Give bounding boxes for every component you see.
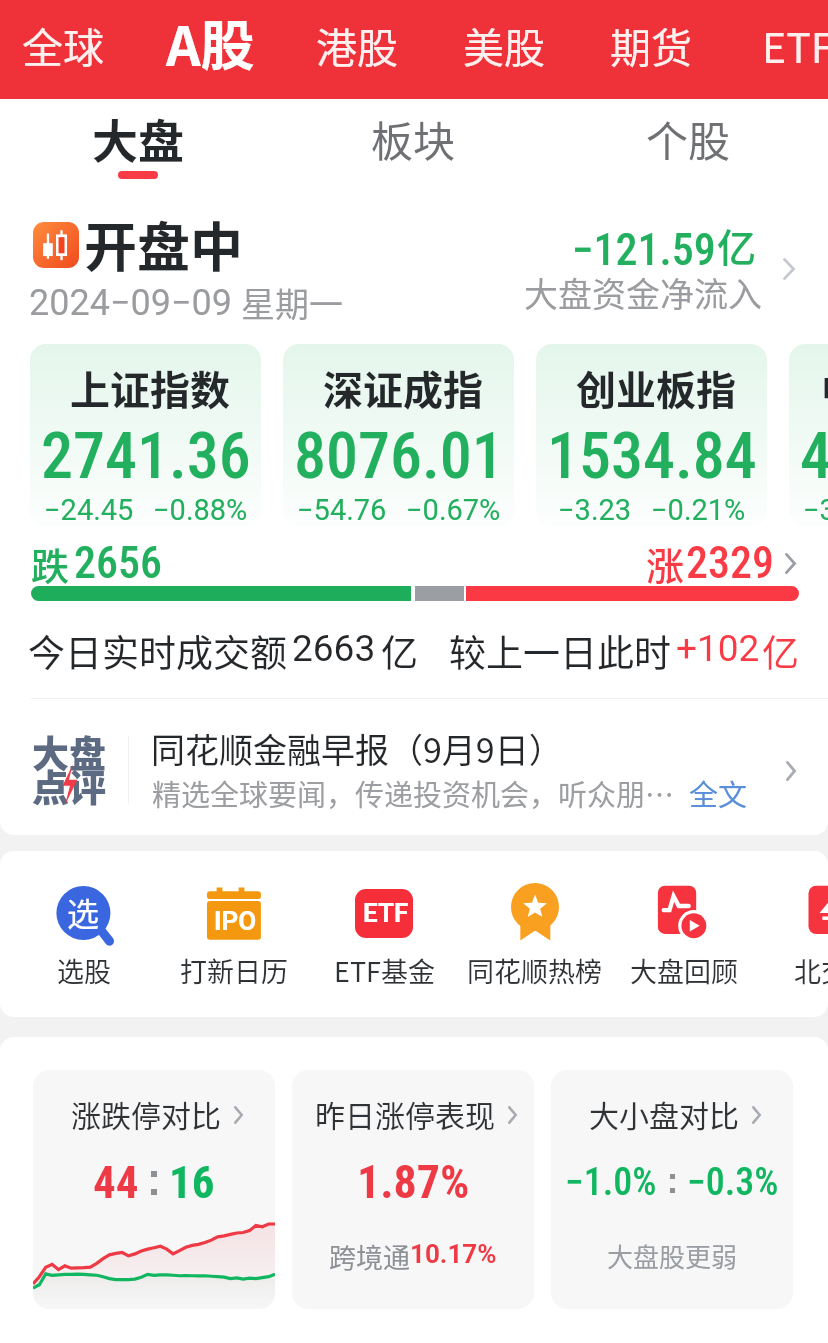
- staticText: 4686.15: [800, 419, 828, 494]
- staticText: 大盘股更弱: [607, 1237, 738, 1275]
- staticText: 板块: [371, 108, 456, 169]
- button[interactable]: 大盘: [46, 99, 230, 191]
- button[interactable]: 北交所: [760, 851, 828, 1017]
- staticText: 精选全球要闻，传递投资机会，听众朋…: [152, 772, 675, 814]
- staticText: 打新日历: [180, 951, 288, 990]
- staticText: 44: [93, 1156, 139, 1209]
- button[interactable]: 同花顺热榜: [460, 851, 608, 1017]
- button[interactable]: 跌: [0, 536, 828, 606]
- staticText: −24.45: [44, 493, 134, 526]
- staticText: 大盘回顾: [630, 951, 738, 990]
- staticText: 涨跌停对比: [71, 1092, 221, 1135]
- staticText: 上证指数: [70, 359, 230, 417]
- button[interactable]: 中证1000: [789, 344, 828, 526]
- staticText: 亿: [381, 624, 418, 678]
- button[interactable]: 打新日历: [160, 851, 308, 1017]
- button[interactable]: 期货: [578, 0, 724, 99]
- button[interactable]: ETF: [725, 0, 828, 99]
- staticText: −121.59: [572, 224, 716, 276]
- button[interactable]: 美股: [431, 0, 577, 99]
- staticText: 1.87%: [357, 1155, 470, 1209]
- staticText: −3.23: [558, 493, 632, 526]
- staticText: 深证成指: [323, 359, 483, 417]
- staticText: 昨日涨停表现: [315, 1092, 495, 1135]
- staticText: 点评: [32, 759, 106, 813]
- staticText: 选股: [57, 951, 111, 990]
- staticText: 全文: [689, 772, 748, 814]
- staticText: 中证1000: [821, 359, 828, 417]
- button[interactable]: ETF基金: [310, 851, 458, 1017]
- button[interactable]: 开盘中: [0, 200, 828, 327]
- staticText: +102: [676, 627, 760, 670]
- staticText: 大小盘对比: [589, 1092, 739, 1135]
- staticText: 2663: [292, 627, 376, 670]
- staticText: 较上一日此时: [449, 624, 671, 678]
- staticText: −0.3%: [687, 1160, 779, 1205]
- button[interactable]: 深证成指: [283, 344, 514, 526]
- button[interactable]: 大盘: [0, 709, 828, 833]
- staticText: 同花顺热榜: [467, 951, 602, 990]
- staticText: 2656: [74, 537, 162, 589]
- staticText: −0.67%: [406, 493, 501, 526]
- staticText: 2024−09−09: [29, 282, 233, 324]
- staticText: 同花顺金融早报（9月9日）: [151, 724, 563, 773]
- button[interactable]: 昨日涨停表现: [292, 1070, 534, 1309]
- staticText: 亿: [762, 624, 799, 678]
- staticText: ETF: [762, 15, 828, 74]
- staticText: 大盘: [32, 725, 106, 779]
- staticText: 港股: [316, 15, 398, 74]
- staticText: IPO: [214, 906, 257, 936]
- staticText: 今日实时成交额: [28, 624, 287, 678]
- button[interactable]: 上证指数: [30, 344, 261, 526]
- staticText: ETF: [363, 898, 409, 928]
- staticText: 大盘资金净流入: [524, 268, 762, 317]
- staticText: 创业板指: [576, 359, 736, 417]
- staticText: 开盘中: [84, 206, 243, 283]
- staticText: −0.88%: [153, 493, 248, 526]
- button[interactable]: 板块: [321, 99, 505, 191]
- staticText: 10.17%: [410, 1239, 497, 1269]
- button[interactable]: 创业板指: [536, 344, 767, 526]
- button[interactable]: 大盘回顾: [610, 851, 758, 1017]
- staticText: 美股: [463, 15, 545, 74]
- button[interactable]: 个股: [596, 99, 780, 191]
- staticText: 亿: [717, 217, 757, 273]
- button[interactable]: 全球: [0, 0, 136, 99]
- button[interactable]: 选股: [10, 851, 158, 1017]
- staticText: 星期一: [241, 278, 343, 327]
- staticText: 16: [169, 1156, 215, 1209]
- staticText: 全球: [22, 15, 104, 74]
- staticText: 涨: [646, 536, 685, 591]
- staticText: 跨境通: [329, 1237, 410, 1276]
- staticText: 跌: [31, 536, 70, 591]
- button[interactable]: 港股: [284, 0, 430, 99]
- staticText: 1534.84: [547, 419, 757, 494]
- button[interactable]: A股: [137, 0, 283, 99]
- staticText: 大盘: [92, 105, 184, 172]
- staticText: A股: [166, 3, 255, 81]
- staticText: 北交所: [794, 951, 828, 990]
- staticText: −1.0%: [565, 1160, 657, 1205]
- staticText: −54.76: [297, 493, 387, 526]
- staticText: ETF基金: [334, 951, 435, 990]
- staticText: 选: [67, 889, 100, 935]
- staticText: 2741.36: [41, 419, 251, 494]
- staticText: 期货: [610, 15, 692, 74]
- staticText: −0.21%: [651, 493, 746, 526]
- staticText: 2329: [686, 537, 774, 589]
- button[interactable]: 大小盘对比: [551, 1070, 793, 1309]
- staticText: 8076.01: [294, 419, 504, 494]
- staticText: 个股: [646, 108, 731, 169]
- staticText: −33.41: [803, 493, 828, 526]
- button[interactable]: 涨跌停对比: [33, 1070, 275, 1309]
